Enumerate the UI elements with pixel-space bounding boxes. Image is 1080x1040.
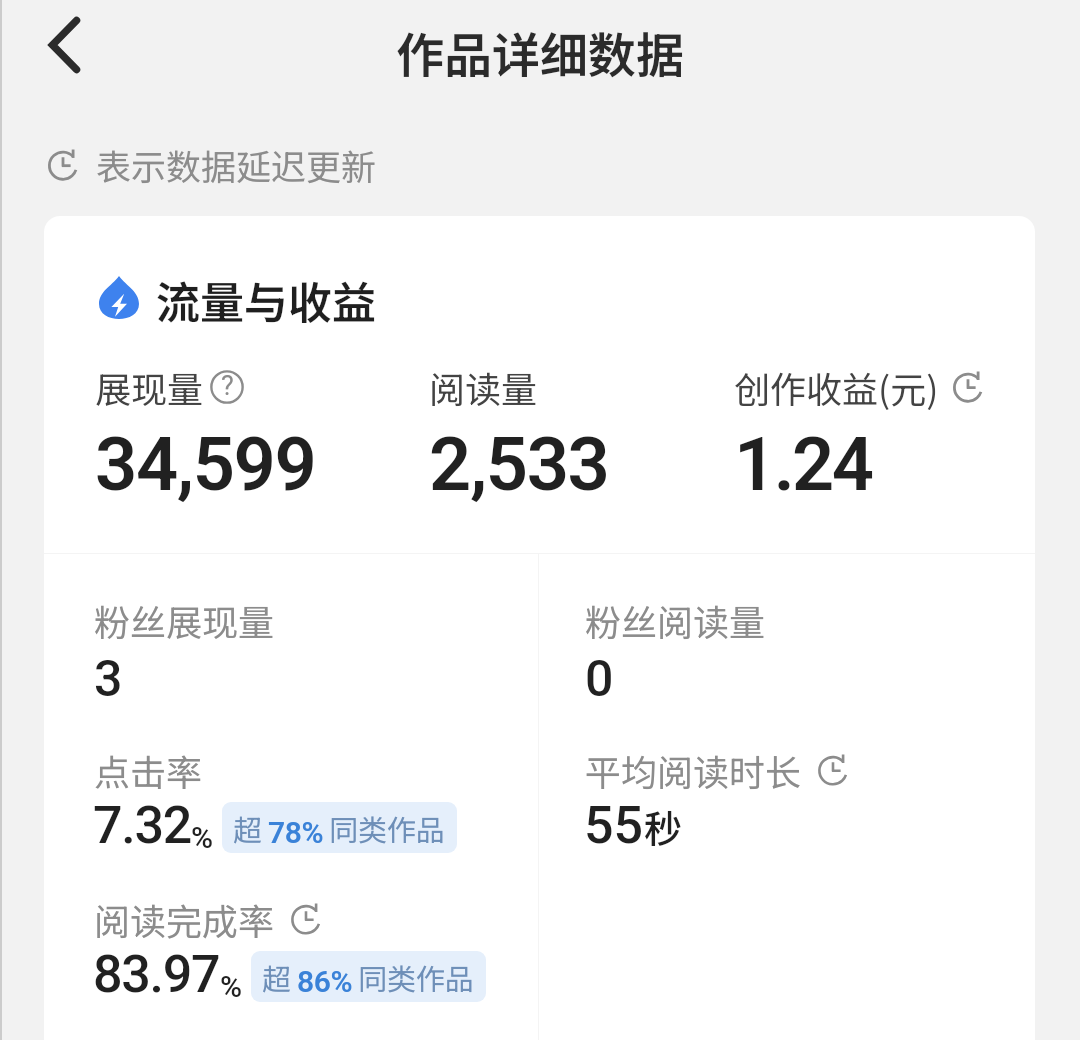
- staticText: 34,599: [95, 421, 316, 508]
- button[interactable]: 阅读量: [429, 361, 609, 508]
- button[interactable]: 粉丝展现量: [94, 581, 524, 699]
- button[interactable]: 粉丝阅读量: [585, 581, 1015, 699]
- staticText: 阅读量: [429, 361, 538, 413]
- staticText: 点击率: [94, 744, 203, 796]
- staticText: 展现量: [95, 361, 204, 413]
- staticText: ?: [221, 370, 234, 402]
- staticText: 0: [585, 650, 614, 699]
- staticText: 83.97: [93, 944, 220, 1005]
- staticText: 表示数据延迟更新: [96, 139, 377, 190]
- button[interactable]: 创作收益(元): [734, 361, 985, 508]
- button[interactable]: Back: [19, 0, 109, 90]
- button[interactable]: 平均阅读时长: [584, 730, 1014, 865]
- button[interactable]: 阅读完成率: [93, 879, 523, 1014]
- button[interactable]: 点击率: [93, 730, 523, 865]
- staticText: 同类作品: [329, 807, 446, 849]
- staticText: 粉丝展现量: [94, 594, 275, 646]
- staticText: 7.32: [93, 795, 191, 856]
- staticText: 平均阅读时长: [585, 744, 802, 796]
- staticText: 阅读完成率: [94, 893, 275, 945]
- staticText: 超: [262, 956, 292, 998]
- staticText: 秒: [644, 799, 683, 854]
- staticText: 创作收益(元): [734, 361, 939, 413]
- staticText: 作品详细数据: [0, 17, 1080, 87]
- staticText: 1.24: [734, 421, 872, 508]
- staticText: 粉丝阅读量: [585, 594, 766, 646]
- staticText: %: [191, 820, 214, 855]
- staticText: %: [220, 969, 243, 1004]
- staticText: 同类作品: [358, 956, 475, 998]
- staticText: 流量与收益: [156, 268, 376, 332]
- staticText: 超: [233, 807, 263, 849]
- staticText: 2,533: [429, 421, 609, 508]
- button[interactable]: 展现量: [95, 361, 316, 508]
- staticText: 55: [584, 795, 644, 856]
- staticText: 86%: [297, 964, 353, 999]
- staticText: 3: [94, 650, 123, 699]
- staticText: 78%: [268, 815, 324, 850]
